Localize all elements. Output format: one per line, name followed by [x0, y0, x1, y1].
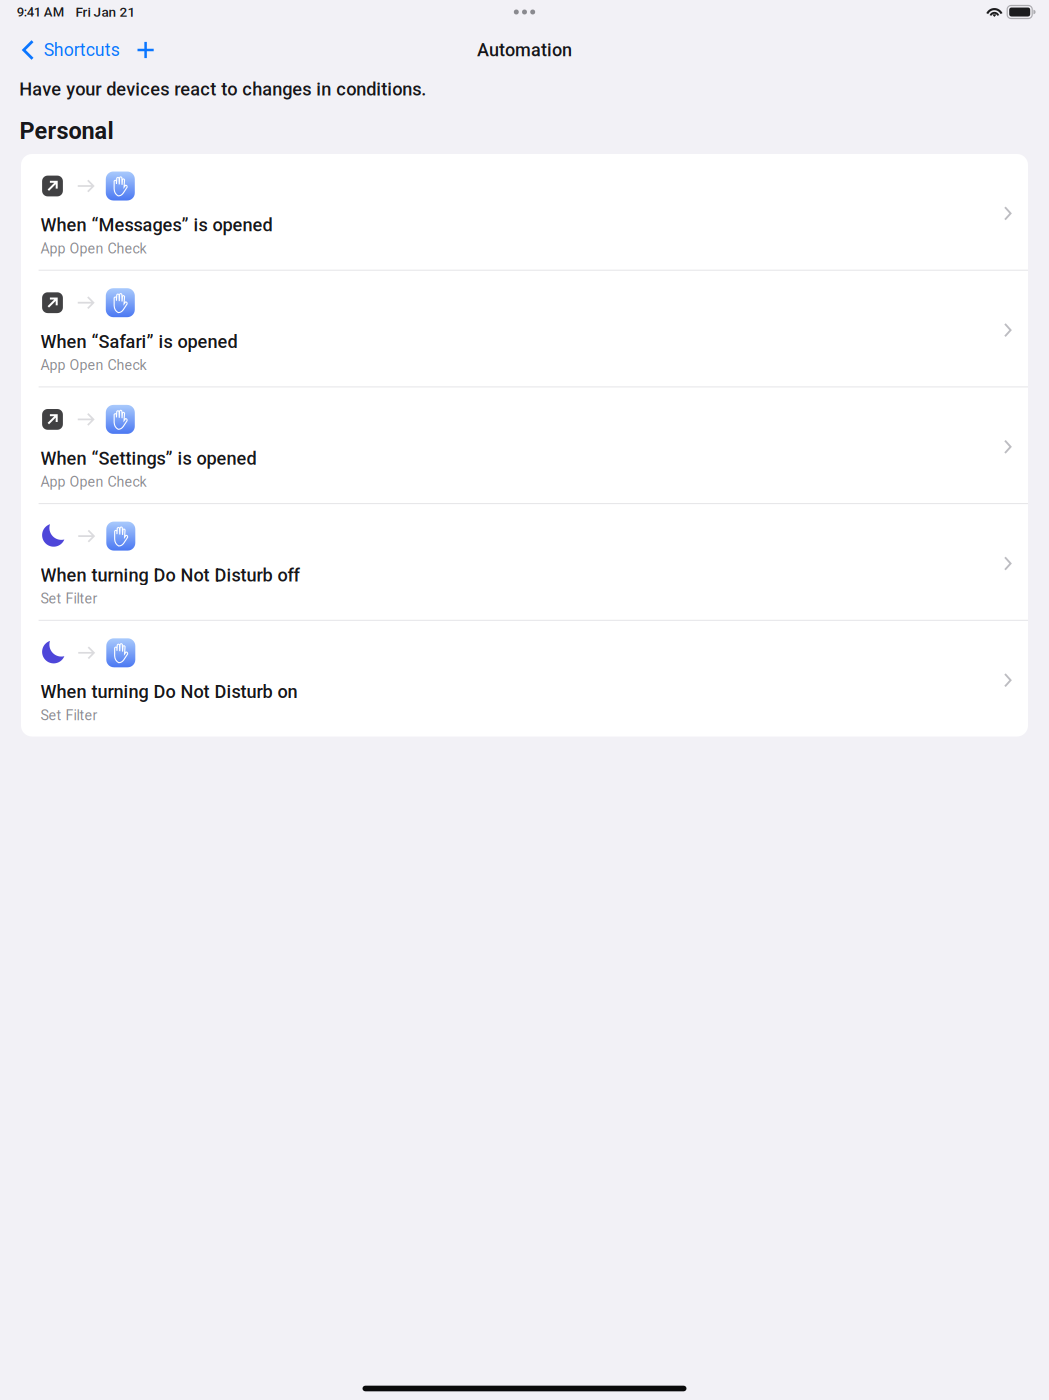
staticText: When turning Do Not Disturb off — [41, 565, 300, 586]
button[interactable]: When turning Do Not Disturb off — [21, 504, 1028, 620]
staticText: Automation — [477, 39, 572, 61]
staticText: Personal — [20, 117, 114, 145]
button[interactable]: Shortcuts — [0, 24, 126, 76]
staticText: Fri Jan 21 — [75, 4, 135, 20]
staticText: When “Settings” is opened — [41, 448, 257, 469]
button[interactable]: New Automation — [129, 24, 162, 76]
staticText: App Open Check — [41, 357, 147, 373]
staticText: Shortcuts — [44, 40, 120, 60]
button[interactable]: When “Messages” is opened — [21, 154, 1028, 270]
staticText: 9:41 AM — [17, 4, 64, 20]
staticText: Set Filter — [41, 707, 98, 724]
staticText: Set Filter — [41, 590, 98, 607]
staticText: When “Messages” is opened — [41, 214, 273, 236]
staticText: Have your devices react to changes in co… — [19, 78, 426, 100]
button[interactable]: When “Settings” is opened — [21, 387, 1028, 503]
staticText: When turning Do Not Disturb on — [41, 681, 298, 702]
staticText: App Open Check — [41, 474, 147, 490]
staticText: App Open Check — [41, 240, 147, 257]
button[interactable]: When “Safari” is opened — [21, 271, 1028, 386]
staticText: When “Safari” is opened — [41, 331, 238, 352]
button[interactable]: When turning Do Not Disturb on — [21, 621, 1028, 736]
